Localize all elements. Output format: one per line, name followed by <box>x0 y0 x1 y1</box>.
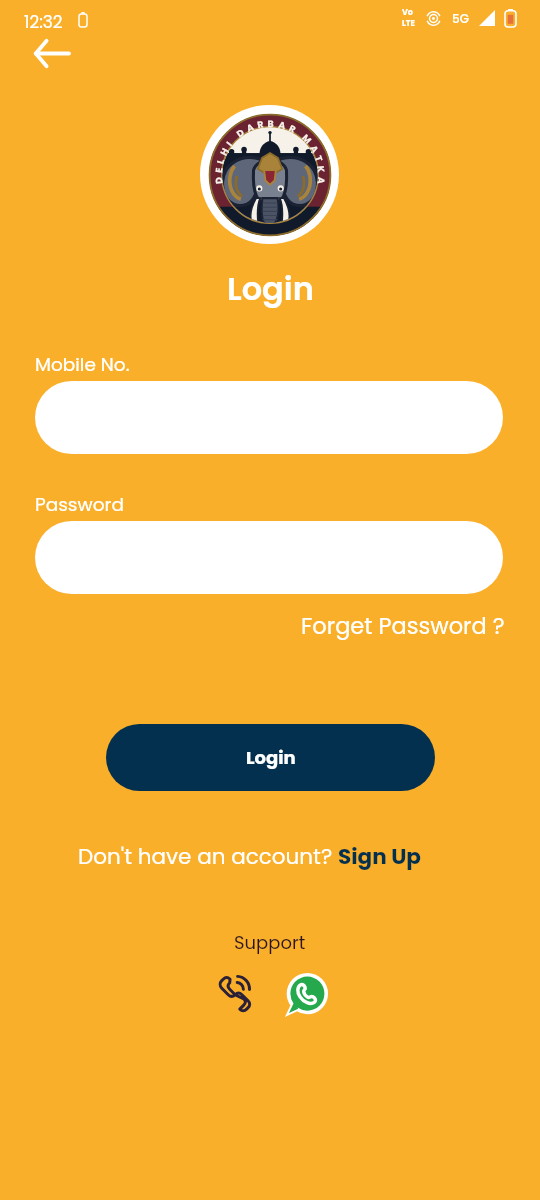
staticText: 5G <box>452 10 469 27</box>
staticText: 12:32 <box>24 10 63 34</box>
staticText: Sign Up <box>338 841 421 871</box>
button[interactable] <box>35 521 503 594</box>
staticText: LTE <box>402 18 415 29</box>
button[interactable]: WhatsApp support <box>281 970 330 1019</box>
staticText: Vo <box>402 7 413 18</box>
button[interactable]: Sign Up <box>338 841 421 871</box>
button[interactable]: Call support <box>214 970 258 1014</box>
staticText: Support <box>234 930 306 955</box>
staticText: Password <box>35 492 124 518</box>
staticText: Login <box>227 266 314 311</box>
staticText: Don't have an account? <box>78 841 338 871</box>
button[interactable]: Forget Password ? <box>301 610 505 641</box>
staticText: Login <box>246 745 296 770</box>
button[interactable]: Back <box>26 36 78 70</box>
button[interactable] <box>35 381 503 454</box>
staticText: Forget Password ? <box>301 610 505 641</box>
staticText: Mobile No. <box>35 352 130 378</box>
button[interactable]: Login <box>106 724 435 791</box>
